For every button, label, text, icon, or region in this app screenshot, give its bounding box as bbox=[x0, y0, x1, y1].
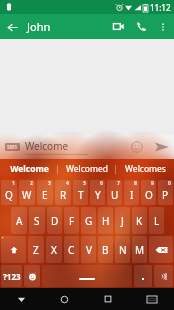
staticText: C bbox=[68, 243, 75, 257]
button[interactable]: Back bbox=[0, 15, 24, 39]
button[interactable]: 7 bbox=[107, 180, 122, 205]
button[interactable]: Emoji bbox=[24, 265, 40, 287]
staticText: SMS bbox=[7, 144, 18, 151]
staticText: P bbox=[162, 188, 169, 202]
button[interactable]: G bbox=[81, 207, 96, 234]
staticText: T bbox=[78, 188, 84, 202]
staticText: A bbox=[16, 214, 23, 228]
staticText: Y bbox=[95, 188, 101, 202]
button[interactable]: Home bbox=[43, 288, 86, 310]
staticText: B bbox=[102, 243, 109, 257]
button[interactable]: SMS bbox=[5, 143, 20, 151]
staticText: I bbox=[130, 188, 134, 202]
button[interactable]: Shift bbox=[1, 236, 26, 263]
staticText: Z bbox=[33, 243, 39, 257]
staticText: Welcomes bbox=[125, 163, 166, 175]
button[interactable]: F bbox=[64, 207, 79, 234]
button[interactable]: M bbox=[132, 236, 147, 263]
button[interactable]: Welcomed bbox=[58, 159, 116, 179]
button[interactable]: Back bbox=[0, 288, 43, 310]
staticText: E bbox=[42, 188, 48, 202]
staticText: 2 bbox=[30, 180, 33, 187]
button[interactable]: Call bbox=[130, 15, 153, 38]
staticText: S bbox=[34, 214, 40, 228]
button[interactable]: A bbox=[11, 207, 27, 234]
staticText: U bbox=[111, 188, 119, 202]
staticText: John bbox=[27, 19, 51, 34]
staticText: 11:12 bbox=[150, 2, 171, 13]
button[interactable]: X bbox=[46, 236, 62, 263]
staticText: J bbox=[121, 214, 124, 228]
staticText: R bbox=[60, 188, 67, 202]
staticText: F bbox=[69, 214, 75, 228]
staticText: N bbox=[119, 243, 127, 257]
staticText: O bbox=[145, 188, 153, 202]
staticText: H bbox=[102, 214, 110, 228]
button[interactable]: ?123 bbox=[1, 265, 22, 287]
button[interactable]: 1 bbox=[1, 180, 17, 205]
button[interactable]: J bbox=[115, 207, 130, 234]
button[interactable]: H bbox=[98, 207, 113, 234]
button[interactable]: Video call bbox=[107, 15, 130, 38]
button[interactable]: S bbox=[29, 207, 45, 234]
button[interactable]: Welcomes bbox=[116, 159, 174, 179]
staticText: 8 bbox=[134, 180, 137, 187]
button[interactable]: V bbox=[81, 236, 96, 263]
staticText: ?123 bbox=[3, 271, 21, 282]
button[interactable]: 9 bbox=[141, 180, 156, 205]
button[interactable]: Space bbox=[42, 265, 132, 287]
button[interactable]: Welcome bbox=[0, 159, 58, 179]
staticText: Welcomed bbox=[66, 163, 108, 175]
button[interactable]: K bbox=[132, 207, 147, 234]
button[interactable]: 2 bbox=[19, 180, 35, 205]
staticText: D bbox=[51, 214, 59, 228]
button[interactable]: 6 bbox=[90, 180, 105, 205]
button[interactable]: 8 bbox=[124, 180, 139, 205]
button[interactable]: L bbox=[149, 207, 164, 234]
button[interactable]: More options bbox=[153, 17, 173, 37]
button[interactable]: Recent apps bbox=[86, 288, 130, 310]
staticText: 0 bbox=[168, 180, 171, 187]
staticText: 4 bbox=[66, 180, 69, 187]
button[interactable]: Backspace bbox=[149, 236, 173, 263]
staticText: K bbox=[136, 214, 143, 228]
staticText: G bbox=[85, 214, 93, 228]
button[interactable]: 0 bbox=[158, 180, 173, 205]
staticText: 7 bbox=[117, 180, 120, 187]
button[interactable]: Voice input bbox=[154, 265, 173, 287]
button[interactable] bbox=[134, 265, 152, 287]
staticText: 5 bbox=[83, 180, 86, 187]
staticText: 3 bbox=[48, 180, 51, 187]
staticText: W bbox=[22, 188, 32, 202]
staticText: X bbox=[51, 243, 57, 257]
staticText: 6 bbox=[100, 180, 103, 187]
button[interactable]: Switch keyboard bbox=[130, 288, 174, 310]
staticText: 1 bbox=[12, 180, 15, 187]
button[interactable]: Z bbox=[28, 236, 44, 263]
button[interactable]: Send bbox=[148, 135, 174, 159]
staticText: 9 bbox=[151, 180, 154, 187]
button[interactable]: B bbox=[98, 236, 113, 263]
staticText: Q bbox=[5, 188, 13, 202]
button[interactable]: C bbox=[64, 236, 79, 263]
staticText: L bbox=[154, 214, 160, 228]
staticText: Welcome bbox=[10, 163, 49, 175]
staticText: V bbox=[86, 243, 92, 257]
staticText: M bbox=[135, 243, 145, 257]
button[interactable]: Insert emoji bbox=[126, 136, 148, 158]
button[interactable]: 4 bbox=[55, 180, 71, 205]
button[interactable]: 5 bbox=[73, 180, 88, 205]
staticText: Welcome bbox=[25, 139, 69, 153]
button[interactable]: 3 bbox=[37, 180, 53, 205]
button[interactable]: N bbox=[115, 236, 130, 263]
button[interactable]: D bbox=[47, 207, 62, 234]
